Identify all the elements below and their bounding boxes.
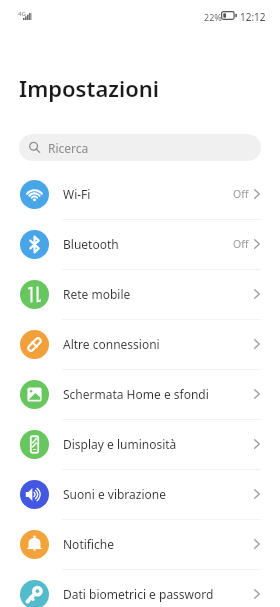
button[interactable]: Notifiche: [0, 519, 280, 569]
staticText: Ricerca: [48, 140, 89, 156]
staticText: Suoni e vibrazione: [63, 486, 166, 502]
staticText: Notifiche: [63, 536, 114, 552]
staticText: 22%: [204, 11, 222, 23]
staticText: Dati biometrici e password: [63, 586, 214, 602]
staticText: Display e luminosità: [63, 436, 177, 452]
button[interactable]: Wi-Fi: [0, 169, 280, 219]
staticText: Altre connessioni: [63, 336, 160, 352]
button[interactable]: Rete mobile: [0, 269, 280, 319]
staticText: 12:12: [240, 10, 266, 24]
button[interactable]: Altre connessioni: [0, 319, 280, 369]
button[interactable]: Dati biometrici e password: [0, 569, 280, 607]
button[interactable]: Display e luminosità: [0, 419, 280, 469]
staticText: Rete mobile: [63, 286, 131, 302]
staticText: Wi-Fi: [63, 186, 91, 202]
button[interactable]: Bluetooth: [0, 219, 280, 269]
staticText: Off: [233, 237, 249, 251]
staticText: Off: [233, 187, 249, 201]
staticText: Bluetooth: [63, 236, 119, 252]
staticText: Schermata Home e sfondi: [63, 386, 209, 402]
staticText: 4G: [18, 10, 26, 18]
staticText: Impostazioni: [19, 73, 159, 103]
button[interactable]: Ricerca: [19, 134, 261, 161]
button[interactable]: Suoni e vibrazione: [0, 469, 280, 519]
button[interactable]: Schermata Home e sfondi: [0, 369, 280, 419]
